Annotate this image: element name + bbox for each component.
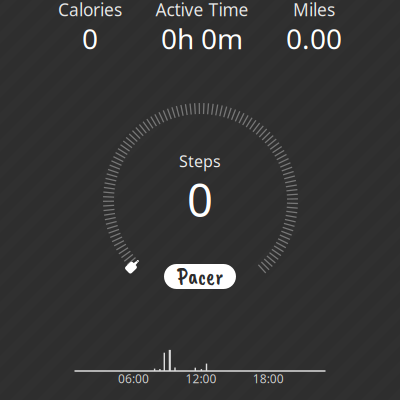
staticText: 0 [187, 169, 213, 230]
staticText: Miles [293, 0, 335, 21]
staticText: 0.00 [286, 20, 342, 57]
staticText: Pacer [177, 262, 223, 291]
staticText: 18:00 [253, 370, 284, 386]
staticText: Active Time [155, 0, 248, 21]
staticText: 12:00 [185, 370, 216, 386]
staticText: Calories [58, 0, 122, 21]
staticText: Steps [179, 150, 221, 172]
staticText: 0h 0m [161, 20, 243, 57]
staticText: 0 [82, 20, 98, 57]
staticText: 06:00 [118, 370, 149, 386]
